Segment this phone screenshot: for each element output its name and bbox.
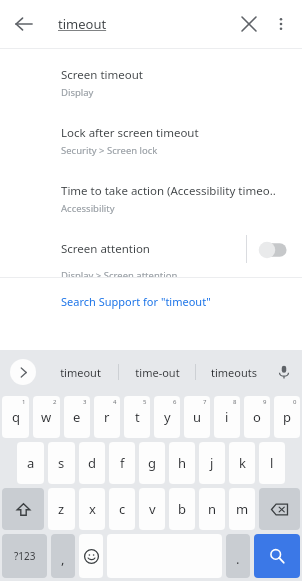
- button[interactable]: Clear: [234, 9, 264, 39]
- button[interactable]: h: [169, 442, 195, 484]
- staticText: 1: [22, 398, 26, 406]
- staticText: timeouts: [211, 365, 257, 380]
- staticText: n: [208, 500, 217, 518]
- staticText: l: [270, 454, 274, 472]
- staticText: x: [89, 500, 96, 518]
- staticText: 5: [143, 398, 147, 406]
- button[interactable]: f: [109, 442, 135, 484]
- staticText: Search Support for "timeout": [61, 294, 211, 309]
- button[interactable]: Search: [254, 534, 300, 578]
- staticText: Lock after screen timeout: [61, 125, 199, 141]
- button[interactable]: d: [79, 442, 105, 484]
- button[interactable]: y: [154, 396, 180, 438]
- staticText: 2: [53, 398, 57, 406]
- staticText: timeout: [60, 365, 101, 380]
- button[interactable]: timeout: [58, 15, 107, 33]
- button[interactable]: z: [48, 488, 75, 530]
- staticText: ,: [61, 550, 65, 568]
- staticText: p: [283, 408, 291, 426]
- staticText: Accessibility: [61, 202, 115, 215]
- staticText: w: [41, 408, 52, 426]
- staticText: j: [210, 454, 214, 472]
- staticText: 7: [203, 398, 207, 406]
- staticText: q: [12, 408, 20, 426]
- button[interactable]: o: [244, 396, 270, 438]
- button[interactable]: ,: [51, 534, 75, 578]
- staticText: ?123: [14, 549, 36, 563]
- staticText: z: [58, 500, 65, 518]
- button[interactable]: g: [139, 442, 165, 484]
- button[interactable]: Shift: [2, 488, 44, 530]
- button[interactable]: e: [64, 396, 90, 438]
- staticText: s: [58, 454, 65, 472]
- button[interactable]: Time to take action (Accessibility timeo…: [0, 157, 302, 215]
- button[interactable]: Search Support for "timeout": [0, 278, 302, 309]
- button[interactable]: b: [169, 488, 195, 530]
- staticText: .: [236, 550, 240, 568]
- button[interactable]: Lock after screen timeout: [0, 99, 302, 157]
- button[interactable]: timeout: [42, 350, 118, 394]
- staticText: v: [149, 500, 156, 518]
- staticText: a: [27, 454, 35, 472]
- staticText: i: [225, 408, 229, 426]
- button[interactable]: timeouts: [196, 350, 272, 394]
- staticText: Display > Screen attention: [61, 269, 178, 277]
- staticText: Display: [61, 86, 94, 99]
- button[interactable]: t: [124, 396, 150, 438]
- staticText: g: [148, 454, 156, 472]
- button[interactable]: l: [259, 442, 285, 484]
- button[interactable]: ?123: [2, 534, 47, 578]
- button[interactable]: u: [184, 396, 210, 438]
- button[interactable]: i: [214, 396, 240, 438]
- staticText: b: [178, 500, 186, 518]
- staticText: 8: [233, 398, 237, 406]
- staticText: Screen attention: [61, 241, 150, 257]
- button[interactable]: Emoji: [79, 534, 103, 578]
- staticText: m: [236, 500, 249, 518]
- button[interactable]: n: [199, 488, 225, 530]
- button[interactable]: time-out: [119, 350, 195, 394]
- staticText: r: [104, 408, 110, 426]
- button[interactable]: p: [274, 396, 300, 438]
- button[interactable]: Screen attention: [0, 215, 302, 277]
- button[interactable]: Expand suggestions: [10, 359, 36, 385]
- button[interactable]: Screen timeout: [0, 49, 302, 99]
- button[interactable]: m: [229, 488, 255, 530]
- staticText: h: [178, 454, 187, 472]
- button[interactable]: x: [79, 488, 105, 530]
- staticText: e: [73, 408, 81, 426]
- staticText: f: [120, 454, 125, 472]
- staticText: o: [253, 408, 261, 426]
- staticText: time-out: [135, 365, 180, 380]
- button[interactable]: Back: [8, 8, 40, 40]
- staticText: k: [239, 454, 246, 472]
- button[interactable]: v: [139, 488, 165, 530]
- button[interactable]: Screen attention toggle: [258, 241, 292, 259]
- staticText: 3: [83, 398, 87, 406]
- button[interactable]: Backspace: [259, 488, 300, 530]
- staticText: d: [88, 454, 96, 472]
- button[interactable]: j: [199, 442, 225, 484]
- button[interactable]: c: [109, 488, 135, 530]
- staticText: c: [119, 500, 126, 518]
- button[interactable]: a: [17, 442, 44, 484]
- staticText: y: [164, 408, 171, 426]
- button[interactable]: More options: [266, 9, 296, 39]
- button[interactable]: q: [2, 396, 29, 438]
- staticText: Security > Screen lock: [61, 144, 158, 157]
- button[interactable]: Voice input: [272, 360, 296, 384]
- staticText: 4: [113, 398, 117, 406]
- staticText: 6: [173, 398, 177, 406]
- button[interactable]: k: [229, 442, 255, 484]
- staticText: t: [135, 408, 140, 426]
- staticText: 0: [293, 398, 297, 406]
- staticText: 9: [263, 398, 267, 406]
- button[interactable]: .: [226, 534, 250, 578]
- button[interactable]: w: [33, 396, 60, 438]
- button[interactable]: r: [94, 396, 120, 438]
- staticText: Time to take action (Accessibility timeo…: [61, 183, 276, 199]
- button[interactable]: s: [48, 442, 75, 484]
- staticText: timeout: [58, 15, 107, 33]
- staticText: u: [193, 408, 202, 426]
